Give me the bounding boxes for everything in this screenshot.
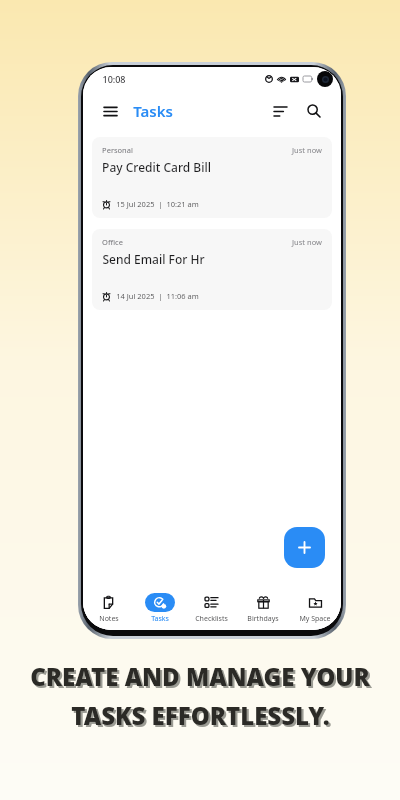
staticText: Tasks bbox=[151, 614, 169, 624]
button[interactable]: Notes bbox=[83, 586, 134, 630]
button[interactable]: Checklists bbox=[185, 586, 237, 630]
staticText: TASKS EFFORTLESSLY. bbox=[71, 699, 330, 732]
staticText: Birthdays bbox=[247, 614, 279, 624]
button[interactable]: Sort bbox=[267, 98, 293, 124]
staticText: CREATE AND MANAGE YOUR bbox=[30, 660, 370, 693]
button[interactable]: Tasks bbox=[134, 586, 185, 630]
staticText: Just now bbox=[292, 145, 322, 155]
button[interactable]: Office bbox=[92, 229, 332, 310]
button[interactable]: Add task bbox=[284, 527, 325, 568]
staticText: TASKS EFFORTLESSLY. bbox=[73, 701, 332, 734]
staticText: Office bbox=[102, 237, 123, 247]
staticText: Personal bbox=[102, 145, 133, 155]
staticText: Just now bbox=[292, 237, 322, 247]
staticText: Pay Credit Card Bill bbox=[102, 159, 211, 175]
button[interactable]: Birthdays bbox=[237, 586, 289, 630]
staticText: Checklists bbox=[195, 614, 228, 624]
button[interactable]: Personal bbox=[92, 137, 332, 218]
button[interactable]: Menu bbox=[97, 98, 123, 124]
button[interactable]: Search bbox=[301, 98, 327, 124]
staticText: 14 Jul 2025 | 11:06 am bbox=[116, 291, 199, 301]
staticText: My Space bbox=[299, 614, 331, 624]
button[interactable]: My Space bbox=[289, 586, 341, 630]
staticText: 10:08 bbox=[102, 73, 126, 85]
staticText: Send Email For Hr bbox=[102, 251, 205, 267]
staticText: CREATE AND MANAGE YOUR bbox=[32, 662, 372, 695]
staticText: 15 Jul 2025 | 10:21 am bbox=[116, 199, 199, 209]
staticText: Tasks bbox=[133, 101, 173, 121]
staticText: Notes bbox=[99, 614, 119, 624]
